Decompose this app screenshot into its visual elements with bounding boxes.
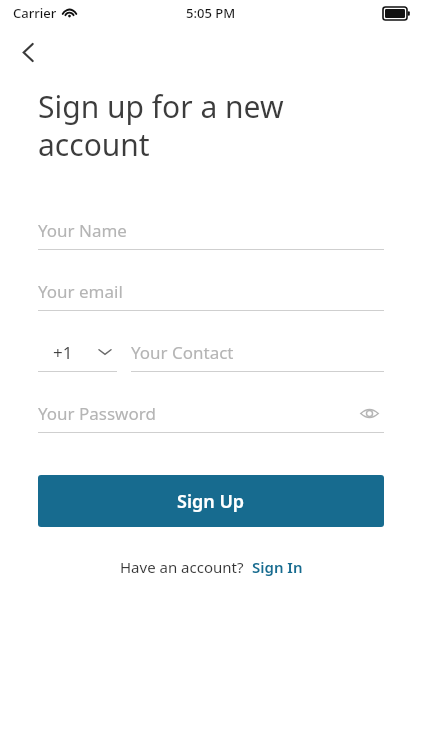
button[interactable]: Show password bbox=[354, 398, 384, 428]
staticText: Sign Up bbox=[177, 489, 245, 514]
button[interactable]: +1 bbox=[38, 333, 117, 372]
staticText: Your email bbox=[38, 280, 123, 303]
staticText: Have an account? bbox=[120, 557, 244, 577]
staticText: +1 bbox=[53, 341, 73, 364]
button[interactable]: Back bbox=[6, 30, 50, 74]
button[interactable]: Sign Up bbox=[38, 475, 384, 527]
button[interactable]: Your Contact bbox=[131, 333, 384, 372]
staticText: Your Name bbox=[38, 219, 127, 242]
button[interactable]: Sign In bbox=[244, 553, 303, 581]
staticText: Sign up for a new account bbox=[38, 86, 384, 165]
staticText: Your Contact bbox=[131, 341, 234, 364]
staticText: Carrier bbox=[13, 4, 57, 22]
staticText: Your Password bbox=[38, 402, 156, 425]
button[interactable]: Your Password bbox=[38, 394, 384, 433]
staticText: 5:05 PM bbox=[186, 4, 236, 22]
button[interactable]: Your email bbox=[38, 272, 384, 311]
staticText: Sign In bbox=[252, 557, 303, 577]
button[interactable]: Your Name bbox=[38, 211, 384, 250]
